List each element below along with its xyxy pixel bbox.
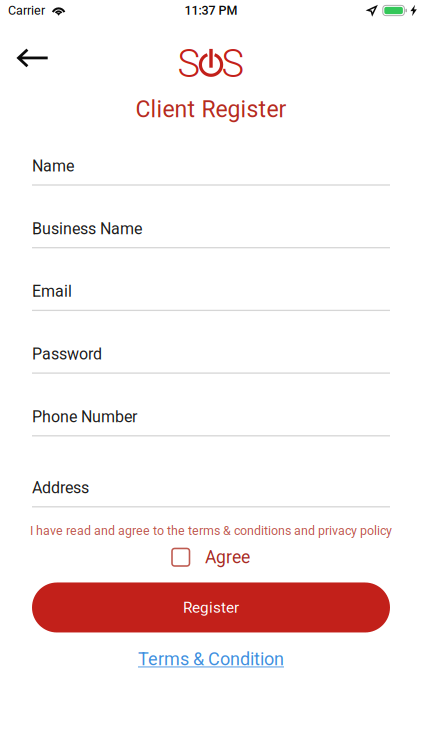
staticText: Name bbox=[32, 157, 74, 175]
staticText: Terms & Condition bbox=[138, 648, 284, 670]
staticText: Email bbox=[32, 282, 72, 301]
staticText: Agree bbox=[205, 547, 250, 567]
staticText: S bbox=[221, 42, 244, 86]
staticText: Register bbox=[183, 598, 239, 616]
staticText: I have read and agree to the terms & con… bbox=[30, 523, 392, 538]
button[interactable]: Back bbox=[0, 28, 61, 71]
button[interactable]: Register bbox=[32, 582, 390, 632]
staticText: Phone Number bbox=[32, 407, 137, 426]
button[interactable]: Terms & Condition bbox=[138, 648, 284, 670]
staticText: Password bbox=[32, 345, 102, 363]
staticText: S bbox=[177, 42, 200, 86]
staticText: Address bbox=[32, 478, 89, 497]
staticText: 11:37 PM bbox=[184, 3, 237, 18]
staticText: Carrier bbox=[8, 3, 45, 18]
staticText: Client Register bbox=[135, 96, 286, 123]
staticText: Business Name bbox=[32, 219, 142, 238]
button[interactable]: Agree bbox=[172, 547, 250, 567]
